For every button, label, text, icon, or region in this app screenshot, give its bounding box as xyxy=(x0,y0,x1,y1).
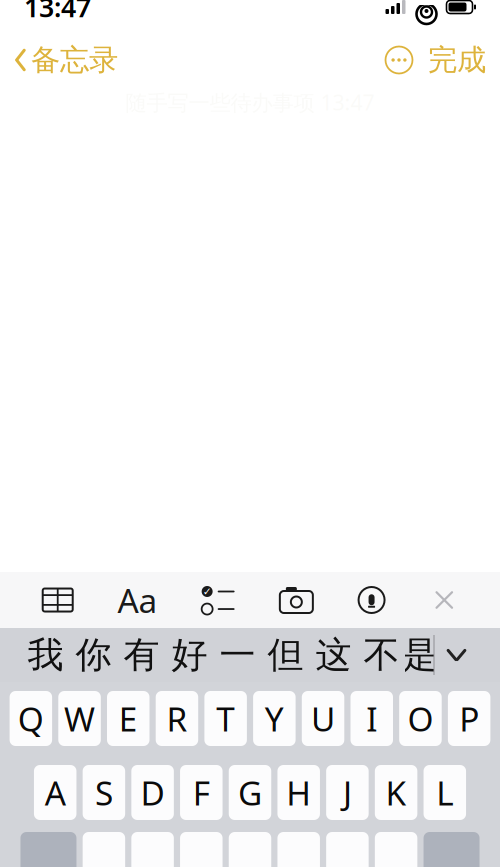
staticText: W xyxy=(64,696,95,741)
button[interactable]: U xyxy=(302,691,344,746)
button[interactable]: 这 xyxy=(309,628,357,682)
button[interactable]: 标记 xyxy=(349,577,395,623)
button[interactable]: 备忘录 xyxy=(14,36,126,84)
button[interactable]: 你 xyxy=(69,628,117,682)
staticText: K xyxy=(386,770,407,815)
staticText: F xyxy=(193,770,210,815)
button[interactable]: 相机 xyxy=(271,578,322,622)
button[interactable]: W xyxy=(58,691,101,746)
button[interactable]: 完成 xyxy=(416,36,486,84)
staticText: 我 xyxy=(27,633,63,677)
staticText: P xyxy=(459,696,479,741)
button[interactable]: 关闭 xyxy=(421,577,467,623)
staticText: 这 xyxy=(315,633,351,677)
staticText: 好 xyxy=(171,633,207,677)
staticText: 一 xyxy=(219,633,255,677)
button[interactable]: Q xyxy=(10,691,52,746)
staticText: J xyxy=(343,770,352,815)
button[interactable]: R xyxy=(156,691,198,746)
staticText: 不 xyxy=(363,633,399,677)
button[interactable]: D xyxy=(131,765,174,820)
button[interactable]: 一 xyxy=(213,628,261,682)
staticText: Y xyxy=(265,696,284,741)
staticText: D xyxy=(141,770,165,815)
button[interactable]: 有 xyxy=(117,628,165,682)
button[interactable]: L xyxy=(423,765,466,820)
button[interactable]: F xyxy=(180,765,223,820)
button[interactable]: H xyxy=(277,765,320,820)
button[interactable]: 不 xyxy=(357,628,405,682)
button[interactable]: 好 xyxy=(165,628,213,682)
staticText: G xyxy=(238,770,262,815)
staticText: T xyxy=(216,696,235,741)
button[interactable]: 更多 xyxy=(382,43,416,77)
staticText: U xyxy=(311,696,335,741)
button[interactable]: T xyxy=(204,691,247,746)
staticText: 备忘录 xyxy=(31,42,118,78)
button[interactable]: Y xyxy=(253,691,296,746)
button[interactable]: 格式 xyxy=(109,570,165,630)
button[interactable]: 是 xyxy=(405,628,433,682)
button[interactable]: J xyxy=(326,765,369,820)
staticText: 完成 xyxy=(428,42,486,78)
button[interactable]: G xyxy=(229,765,271,820)
button[interactable]: K xyxy=(375,765,417,820)
button[interactable]: 我 xyxy=(21,628,69,682)
staticText: 13:47 xyxy=(24,0,91,25)
staticText: 但 xyxy=(267,633,303,677)
staticText: 是 xyxy=(401,633,437,677)
button[interactable]: 但 xyxy=(261,628,309,682)
staticText: Aa xyxy=(117,578,157,622)
staticText: A xyxy=(45,770,66,815)
button[interactable]: 表格 xyxy=(33,578,83,621)
staticText: I xyxy=(366,696,377,741)
button[interactable]: P xyxy=(448,691,490,746)
staticText: O xyxy=(407,696,433,741)
button[interactable]: A xyxy=(34,765,76,820)
staticText: H xyxy=(286,770,311,815)
button[interactable]: 清单 xyxy=(192,577,244,623)
staticText: R xyxy=(166,696,187,741)
staticText: L xyxy=(436,770,453,815)
button[interactable]: O xyxy=(399,691,442,746)
staticText: 你 xyxy=(75,633,111,677)
staticText: 有 xyxy=(123,633,159,677)
button[interactable]: I xyxy=(350,691,393,746)
staticText: S xyxy=(95,770,113,815)
button[interactable]: S xyxy=(83,765,125,820)
staticText: E xyxy=(119,696,138,741)
staticText: ✓ xyxy=(203,585,212,597)
button[interactable]: E xyxy=(107,691,149,746)
button[interactable]: 展开候选 xyxy=(434,628,478,682)
staticText: Q xyxy=(18,696,44,741)
